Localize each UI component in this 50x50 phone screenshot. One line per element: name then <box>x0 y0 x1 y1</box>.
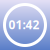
staticText: 01:42 <box>8 16 39 32</box>
button[interactable]: Timer 01:42 <box>0 0 50 50</box>
